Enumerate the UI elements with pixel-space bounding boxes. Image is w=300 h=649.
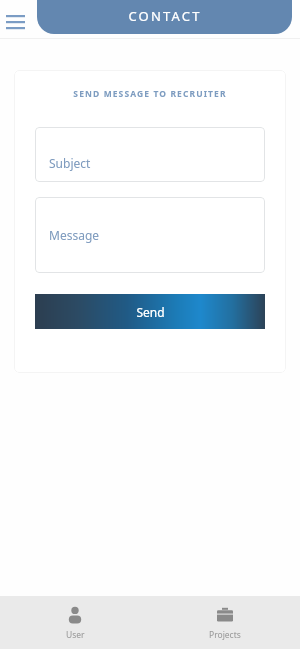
button[interactable]: Subject [35,127,265,182]
button[interactable]: Projects [150,596,300,649]
staticText: SEND MESSAGE TO RECRUITER [14,88,286,100]
staticText: Send [136,304,165,320]
staticText: CONTACT [128,7,202,25]
button[interactable]: Send [35,294,265,329]
staticText: User [66,629,85,641]
button[interactable]: Open navigation menu [2,8,32,32]
button[interactable]: Message [35,197,265,273]
staticText: Message [49,227,100,243]
button[interactable]: User [0,596,150,649]
staticText: Subject [49,155,91,171]
staticText: Projects [209,629,241,641]
